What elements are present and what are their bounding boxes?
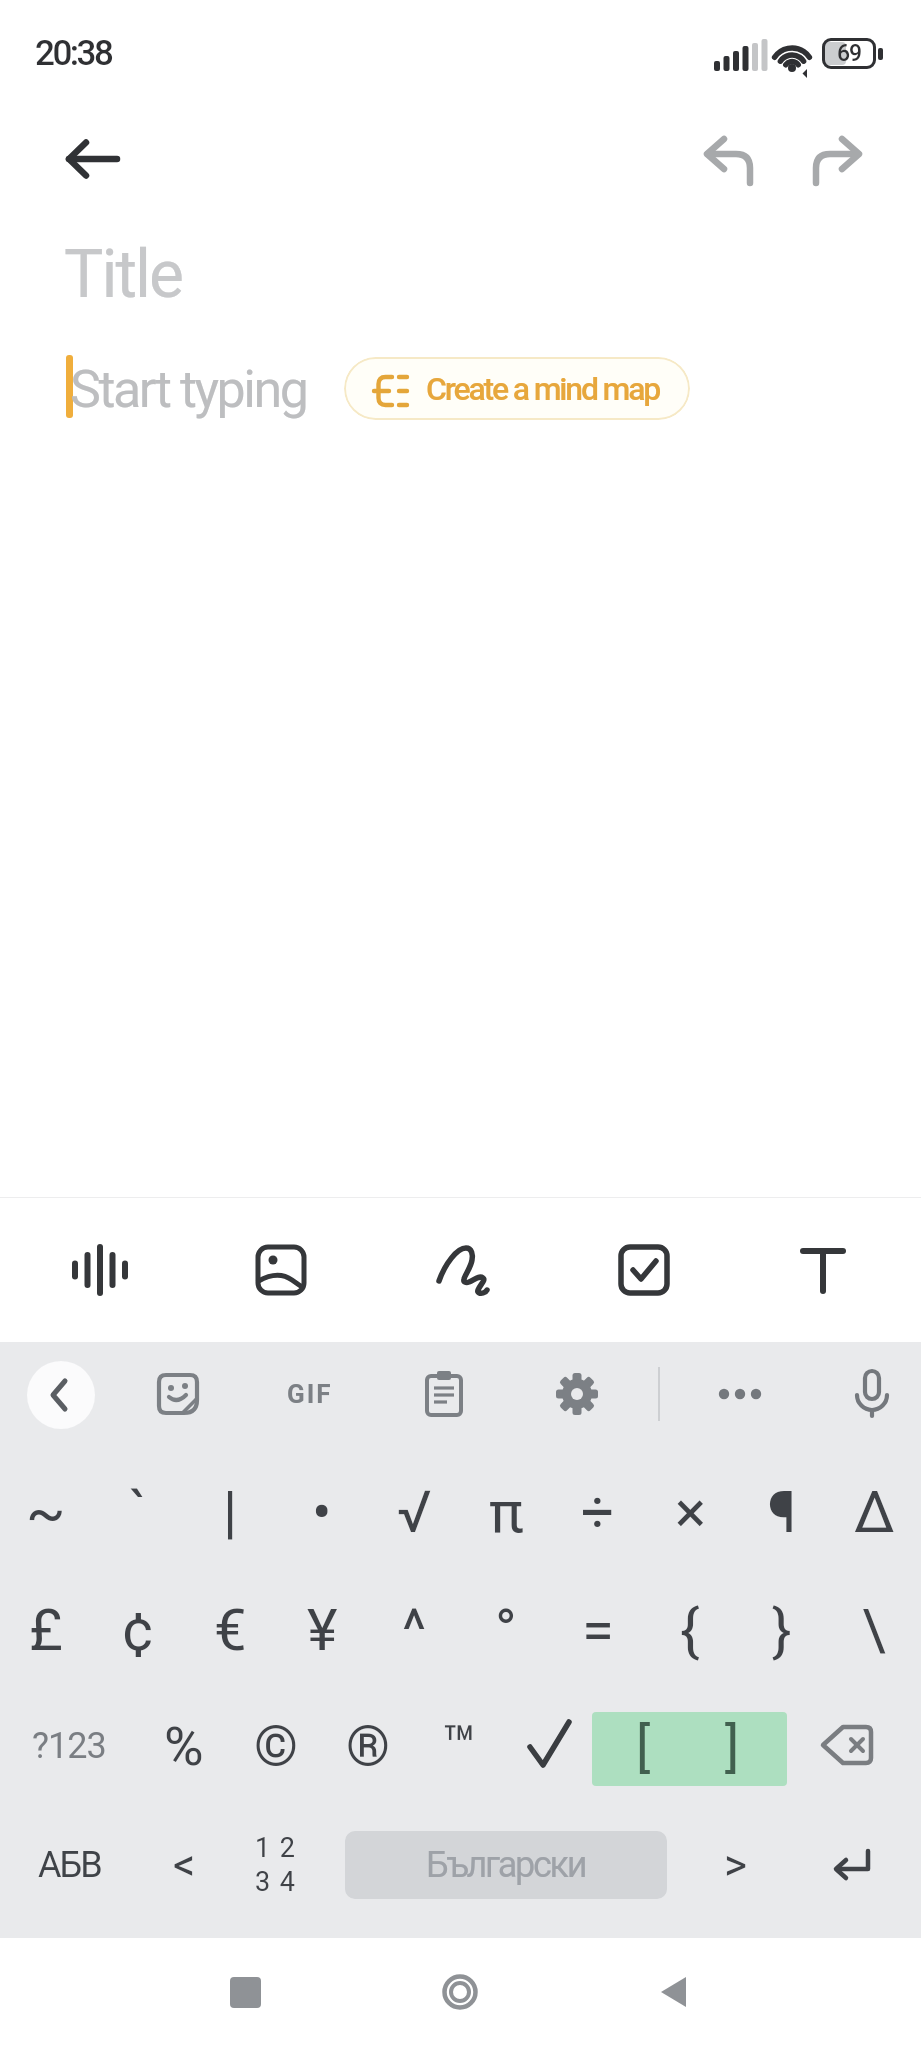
staticText: ^ xyxy=(402,1596,427,1664)
staticText: 20:38 xyxy=(35,33,112,74)
staticText: √ xyxy=(397,1478,432,1546)
staticText: ~ xyxy=(26,1478,66,1546)
staticText: ® xyxy=(346,1713,391,1779)
button[interactable]: ¥ xyxy=(276,1576,368,1684)
button[interactable] xyxy=(27,1361,95,1429)
staticText: ¢ xyxy=(122,1596,154,1664)
button[interactable] xyxy=(144,1360,212,1428)
staticText: < xyxy=(173,1839,196,1891)
button[interactable] xyxy=(210,1957,280,2027)
button[interactable]: ® xyxy=(322,1692,414,1800)
button[interactable]: ` xyxy=(92,1458,184,1566)
button[interactable] xyxy=(822,1719,874,1771)
button[interactable]: • xyxy=(276,1458,368,1566)
staticText: Start typing xyxy=(70,359,307,420)
button[interactable]: ^ xyxy=(368,1576,460,1684)
staticText: ¥ xyxy=(307,1596,338,1664)
staticText: ?123 xyxy=(32,1725,106,1767)
button[interactable] xyxy=(778,1225,868,1315)
staticText: GIF xyxy=(287,1379,333,1409)
button[interactable]: ?123 xyxy=(0,1692,138,1800)
button[interactable]: × xyxy=(644,1458,736,1566)
button[interactable] xyxy=(706,1360,774,1428)
button[interactable]: Δ xyxy=(828,1458,920,1566)
button[interactable]: ¢ xyxy=(92,1576,184,1684)
staticText: 69 xyxy=(837,40,862,67)
button[interactable]: 1 2 xyxy=(230,1819,322,1911)
button[interactable]: £ xyxy=(0,1576,92,1684)
button[interactable]: Български xyxy=(345,1831,667,1899)
staticText: АБВ xyxy=(38,1844,101,1886)
button[interactable]: { xyxy=(644,1576,736,1684)
staticText: [ xyxy=(636,1716,651,1779)
staticText: ° xyxy=(495,1596,517,1664)
staticText: ÷ xyxy=(581,1478,615,1546)
button[interactable]: \ xyxy=(828,1576,920,1684)
staticText: 1 2 xyxy=(255,1832,297,1864)
button[interactable] xyxy=(48,128,128,190)
staticText: € xyxy=(214,1596,247,1664)
button[interactable]: ÷ xyxy=(552,1458,644,1566)
button[interactable] xyxy=(506,1700,598,1792)
staticText: × xyxy=(675,1478,706,1546)
button[interactable]: √ xyxy=(368,1458,460,1566)
button[interactable] xyxy=(696,126,762,192)
button[interactable]: } xyxy=(736,1576,828,1684)
button[interactable]: Create a mind map xyxy=(344,357,690,420)
button[interactable]: = xyxy=(552,1576,644,1684)
staticText: ¶ xyxy=(768,1478,797,1546)
button[interactable] xyxy=(410,1360,478,1428)
staticText: ] xyxy=(725,1716,740,1779)
staticText: ™ xyxy=(442,1713,478,1779)
button[interactable] xyxy=(55,1225,145,1315)
button[interactable]: € xyxy=(184,1576,276,1684)
button[interactable]: © xyxy=(230,1692,322,1800)
staticText: \ xyxy=(862,1596,886,1664)
staticText: Title xyxy=(64,236,183,313)
staticText: ` xyxy=(129,1478,147,1546)
button[interactable]: ~ xyxy=(0,1458,92,1566)
button[interactable]: ° xyxy=(460,1576,552,1684)
staticText: • xyxy=(312,1478,332,1546)
button[interactable] xyxy=(838,1358,906,1426)
button[interactable] xyxy=(543,1360,611,1428)
button[interactable]: > xyxy=(690,1811,782,1919)
staticText: © xyxy=(254,1713,298,1779)
button[interactable] xyxy=(805,1819,897,1911)
button[interactable]: % xyxy=(138,1692,230,1800)
button[interactable]: ™ xyxy=(414,1692,506,1800)
button[interactable] xyxy=(640,1957,710,2027)
staticText: { xyxy=(680,1596,700,1664)
button[interactable]: < xyxy=(138,1811,230,1919)
staticText: % xyxy=(164,1715,204,1778)
staticText: > xyxy=(724,1839,748,1891)
button[interactable] xyxy=(416,1225,506,1315)
button[interactable]: ] xyxy=(686,1693,778,1801)
staticText: } xyxy=(772,1596,792,1664)
staticText: Български xyxy=(426,1844,586,1886)
button[interactable] xyxy=(599,1225,689,1315)
button[interactable]: π xyxy=(460,1458,552,1566)
staticText: Create a mind map xyxy=(426,370,660,408)
button[interactable]: АБВ xyxy=(0,1811,138,1919)
staticText: Δ xyxy=(854,1478,895,1546)
staticText: π xyxy=(489,1478,524,1546)
staticText: | xyxy=(223,1478,238,1546)
button[interactable]: | xyxy=(184,1458,276,1566)
button[interactable] xyxy=(425,1957,495,2027)
button[interactable]: GIF xyxy=(270,1360,350,1428)
button[interactable] xyxy=(236,1225,326,1315)
button[interactable]: [ xyxy=(597,1693,689,1801)
button[interactable] xyxy=(592,1712,787,1786)
staticText: 3 4 xyxy=(255,1866,297,1898)
staticText: £ xyxy=(29,1596,63,1664)
button[interactable]: ¶ xyxy=(736,1458,828,1566)
staticText: = xyxy=(582,1596,614,1664)
button[interactable] xyxy=(804,126,870,192)
